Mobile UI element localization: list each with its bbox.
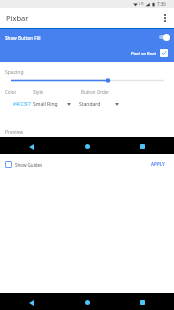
staticText: Show Guides [15,162,43,168]
button[interactable]: Home [82,141,93,152]
button[interactable]: Pixel on Boot [131,49,168,57]
staticText: Style [33,89,81,95]
staticText: LTE [139,2,144,6]
staticText: Show Button Fill [5,35,41,41]
button[interactable]: Home [82,297,93,308]
button[interactable]: More options [162,12,168,24]
button[interactable]: APPLY [142,158,174,170]
staticText: 7:36 [157,1,166,7]
staticText: APPLY [151,161,165,167]
button[interactable]: Back [26,141,37,152]
button[interactable]: #4FC3F7 [13,101,31,107]
button[interactable]: Spacing slider [0,79,174,86]
staticText: Pixel on Boot [131,51,157,56]
button[interactable]: Show Guides [5,161,43,168]
staticText: Small Ring [33,101,58,108]
button[interactable]: Recents [137,297,148,308]
button[interactable]: Toggle show button fill [159,32,170,42]
staticText: Button Order [81,89,110,95]
button[interactable]: Recents [137,141,148,152]
button[interactable]: Back [26,297,37,308]
staticText: Pixbar [6,13,29,23]
button[interactable]: Small Ring [33,100,71,108]
staticText: Preview [5,129,24,136]
button[interactable]: Standard [79,100,119,108]
staticText: Spacing [5,69,24,76]
staticText: Standard [79,101,101,108]
staticText: Color [5,89,33,95]
